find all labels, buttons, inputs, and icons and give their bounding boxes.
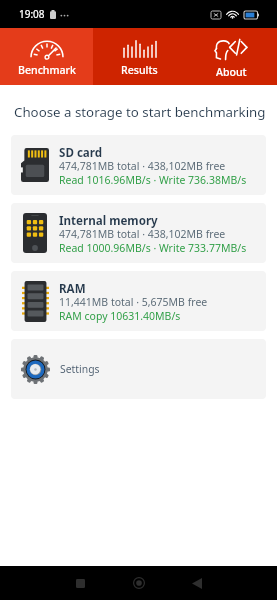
button[interactable]: Benchmark bbox=[0, 28, 93, 85]
button[interactable]: Results bbox=[93, 28, 185, 85]
button[interactable]: Internal memory bbox=[11, 203, 266, 263]
staticText: Read 1000.96MB/s · Write 733.77MB/s bbox=[59, 241, 247, 255]
staticText: RAM bbox=[59, 281, 86, 297]
staticText: 474,781MB total · 438,102MB free bbox=[59, 227, 226, 241]
staticText: 474,781MB total · 438,102MB free bbox=[59, 159, 226, 173]
staticText: Results bbox=[121, 63, 158, 77]
button[interactable]: SD card bbox=[11, 135, 266, 195]
button[interactable]: Back bbox=[177, 566, 217, 600]
button[interactable]: RAM bbox=[11, 271, 266, 331]
button[interactable]: About bbox=[185, 28, 277, 85]
staticText: 11,441MB total · 5,675MB free bbox=[59, 295, 208, 309]
button[interactable]: Home bbox=[119, 566, 159, 600]
staticText: Benchmark bbox=[18, 63, 76, 77]
staticText: Choose a storage to start benchmarking bbox=[14, 103, 266, 121]
staticText: SD card bbox=[59, 145, 103, 161]
staticText: Internal memory bbox=[59, 213, 158, 229]
button[interactable]: Recent apps bbox=[60, 566, 100, 600]
staticText: Read 1016.96MB/s · Write 736.38MB/s bbox=[59, 173, 247, 187]
staticText: Settings bbox=[60, 362, 100, 376]
staticText: RAM copy 10631.40MB/s bbox=[59, 309, 181, 323]
staticText: 19:08 bbox=[19, 7, 45, 21]
staticText: About bbox=[216, 65, 247, 79]
button[interactable]: Settings bbox=[11, 339, 266, 399]
